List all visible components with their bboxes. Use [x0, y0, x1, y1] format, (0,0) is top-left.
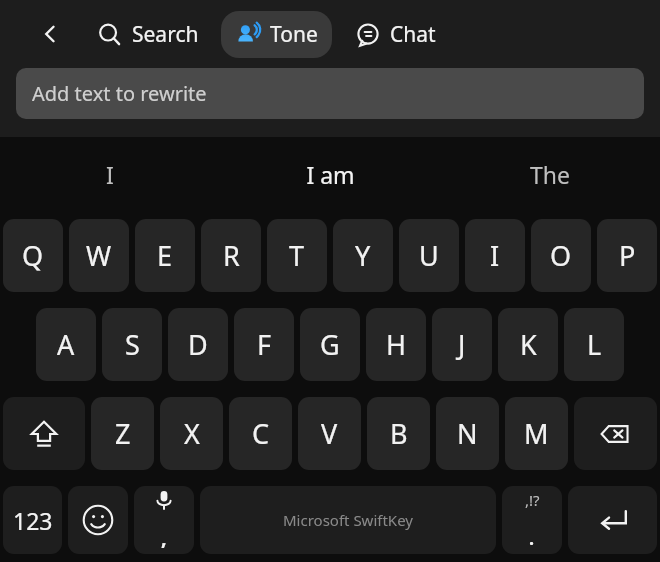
staticText: L: [587, 326, 602, 363]
button[interactable]: The: [440, 137, 660, 211]
button[interactable]: 123: [3, 486, 62, 554]
staticText: E: [157, 237, 173, 274]
staticText: Z: [115, 415, 131, 452]
staticText: Add text to rewrite: [32, 80, 207, 107]
button[interactable]: V: [298, 397, 361, 470]
button[interactable]: L: [564, 308, 624, 381]
staticText: 123: [13, 505, 53, 536]
staticText: T: [289, 237, 305, 274]
staticText: Search: [132, 20, 199, 49]
button[interactable]: Z: [91, 397, 154, 470]
button[interactable]: Tone: [221, 11, 332, 58]
staticText: J: [458, 326, 466, 363]
staticText: B: [390, 415, 408, 452]
button[interactable]: I am: [220, 137, 440, 211]
staticText: I: [490, 237, 500, 274]
button[interactable]: N: [436, 397, 499, 470]
button[interactable]: S: [102, 308, 162, 381]
staticText: Chat: [390, 20, 436, 49]
button[interactable]: Backspace: [574, 397, 657, 470]
staticText: N: [457, 415, 478, 452]
staticText: Microsoft SwiftKey: [283, 510, 413, 530]
button[interactable]: G: [300, 308, 360, 381]
button[interactable]: I: [0, 137, 220, 211]
button[interactable]: M: [505, 397, 568, 470]
staticText: D: [188, 326, 208, 363]
button[interactable]: P: [597, 219, 657, 292]
staticText: I am: [306, 159, 355, 190]
staticText: ,!?: [525, 490, 540, 510]
staticText: I: [106, 159, 114, 190]
staticText: V: [321, 415, 338, 452]
button[interactable]: I: [465, 219, 525, 292]
staticText: Y: [355, 237, 371, 274]
button[interactable]: W: [69, 219, 129, 292]
button[interactable]: Q: [3, 219, 63, 292]
button[interactable]: Search: [92, 14, 205, 55]
staticText: A: [57, 326, 75, 363]
staticText: G: [320, 326, 340, 363]
button[interactable]: Add text to rewrite: [16, 68, 644, 119]
button[interactable]: Enter: [568, 486, 657, 554]
button[interactable]: R: [201, 219, 261, 292]
button[interactable]: Shift: [3, 397, 85, 470]
button[interactable]: E: [135, 219, 195, 292]
staticText: Q: [22, 237, 44, 274]
staticText: H: [386, 326, 407, 363]
button[interactable]: F: [234, 308, 294, 381]
button[interactable]: K: [498, 308, 558, 381]
staticText: C: [252, 415, 270, 452]
button[interactable]: B: [367, 397, 430, 470]
button[interactable]: D: [168, 308, 228, 381]
staticText: X: [184, 415, 200, 452]
button[interactable]: Chat: [350, 14, 442, 55]
button[interactable]: O: [531, 219, 591, 292]
button[interactable]: H: [366, 308, 426, 381]
staticText: M: [524, 415, 549, 452]
button[interactable]: Voice input and comma: [134, 486, 194, 554]
staticText: U: [419, 237, 439, 274]
staticText: W: [86, 237, 112, 274]
staticText: O: [550, 237, 572, 274]
staticText: .: [529, 526, 535, 551]
button[interactable]: J: [432, 308, 492, 381]
button[interactable]: U: [399, 219, 459, 292]
staticText: ,: [161, 524, 167, 551]
staticText: The: [530, 159, 570, 190]
staticText: R: [223, 237, 240, 274]
button[interactable]: Back: [32, 16, 68, 52]
staticText: P: [619, 237, 636, 274]
staticText: K: [520, 326, 537, 363]
button[interactable]: T: [267, 219, 327, 292]
button[interactable]: Punctuation: [502, 486, 562, 554]
button[interactable]: C: [229, 397, 292, 470]
staticText: F: [257, 326, 272, 363]
button[interactable]: Microsoft SwiftKey: [200, 486, 496, 554]
button[interactable]: X: [160, 397, 223, 470]
button[interactable]: A: [36, 308, 96, 381]
staticText: Tone: [270, 20, 318, 49]
button[interactable]: Emoji: [68, 486, 128, 554]
staticText: S: [125, 326, 140, 363]
button[interactable]: Y: [333, 219, 393, 292]
